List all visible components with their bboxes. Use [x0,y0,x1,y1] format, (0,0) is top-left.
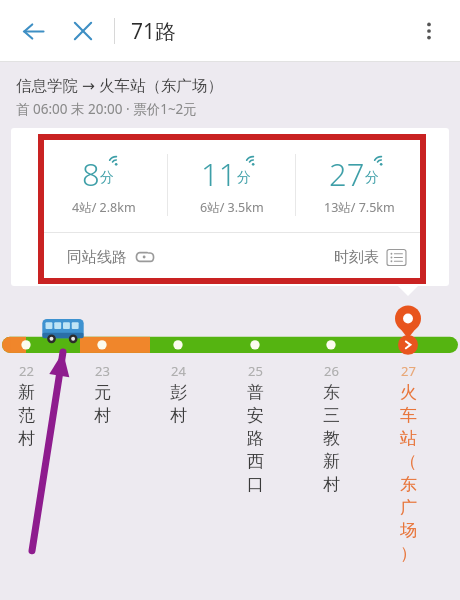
staticText: 口 [247,474,264,495]
staticText: 6站/ 3.5km [200,199,264,216]
button[interactable]: 25 [238,362,272,497]
staticText: 新 [323,451,340,472]
staticText: 22 [19,362,34,380]
staticText: 火 [400,382,417,403]
staticText: 首 06:00 末 20:00 · 票价1~2元 [16,100,197,118]
button[interactable]: 26 [314,362,348,497]
staticText: 村 [94,405,111,426]
button[interactable]: 27 [391,362,425,566]
staticText: 同站线路 [67,248,127,267]
staticText: 25 [248,362,263,380]
staticText: 东 [400,474,417,495]
staticText: （ [400,451,417,472]
button[interactable]: More options [408,10,450,52]
staticText: 范 [18,405,35,426]
staticText: 村 [18,428,35,449]
staticText: 新 [18,382,35,403]
button[interactable]: 同站线路 [41,233,232,281]
staticText: 广 [400,497,417,518]
staticText: 11 [201,153,237,195]
staticText: 信息学院 → 火车站（东广场） [16,74,224,95]
staticText: 路 [247,428,264,449]
staticText: 23 [95,362,110,380]
staticText: 26 [324,362,339,380]
staticText: 西 [247,451,264,472]
staticText: 村 [323,474,340,495]
staticText: 分 [237,169,251,187]
staticText: 27 [401,362,416,380]
button[interactable]: Back [12,10,54,52]
button[interactable]: 8 [41,153,167,216]
button[interactable]: 27 [296,153,423,216]
button[interactable]: 23 [85,362,119,428]
staticText: 教 [323,428,340,449]
staticText: 4站/ 2.8km [72,199,136,216]
staticText: 24 [171,362,186,380]
button[interactable]: Close [62,10,104,52]
staticText: 安 [247,405,264,426]
staticText: 场 [400,520,417,541]
staticText: 站 [400,428,417,449]
staticText: 东 [323,382,340,403]
button[interactable]: 11 [168,153,295,216]
staticText: ） [400,543,417,564]
staticText: 分 [100,169,114,187]
staticText: 村 [170,405,187,426]
staticText: 车 [400,405,417,426]
staticText: 彭 [170,382,187,403]
staticText: 27 [329,153,365,195]
button[interactable]: 22 [9,362,43,451]
button[interactable]: 时刻表 [232,233,423,281]
staticText: 分 [365,169,379,187]
staticText: 时刻表 [334,248,379,267]
staticText: 13站/ 7.5km [324,199,395,216]
staticText: 三 [323,405,340,426]
button[interactable]: 24 [161,362,195,428]
staticText: 元 [94,382,111,403]
staticText: 8 [82,153,100,195]
staticText: 71路 [131,17,177,46]
staticText: 普 [247,382,264,403]
